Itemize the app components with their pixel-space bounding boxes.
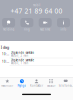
staticText: ring <box>24 28 30 31</box>
staticText: Telefonsvarer <box>58 84 73 87</box>
staticText: Utgående samtale <box>11 58 35 62</box>
button[interactable]: Tastatur <box>44 78 58 89</box>
staticText: Utgående samtale <box>11 51 35 54</box>
staticText: Mobil, 1 min <box>11 61 29 65</box>
staticText: Kontakter <box>30 84 43 87</box>
staticText: 10:28 <box>2 60 9 63</box>
staticText: mobil <box>32 3 40 7</box>
button[interactable]: Nylige <box>15 78 29 89</box>
button[interactable]: 10:31 <box>0 50 73 58</box>
button[interactable]: Favoritter <box>0 78 15 89</box>
staticText: +47 21 89 64 00 <box>10 6 62 15</box>
staticText: Mobil, 2 min <box>11 54 29 57</box>
staticText: FaceTime <box>40 28 51 31</box>
staticText: Tastatur <box>47 84 56 87</box>
staticText: Favoritter <box>1 84 13 87</box>
button[interactable]: Telefonsvarer <box>58 78 73 89</box>
staticText: 10:31 <box>2 52 9 56</box>
staticText: info <box>60 28 66 31</box>
staticText: I dag <box>1 45 9 50</box>
staticText: melding <box>3 28 15 31</box>
button[interactable]: Kontakter <box>29 78 44 89</box>
button[interactable]: ring <box>19 18 35 32</box>
button[interactable]: melding <box>1 18 17 32</box>
button[interactable]: info <box>55 18 71 32</box>
button[interactable]: 10:28 <box>0 58 73 65</box>
staticText: Nylige <box>17 84 26 87</box>
button[interactable]: FaceTime <box>37 18 53 32</box>
